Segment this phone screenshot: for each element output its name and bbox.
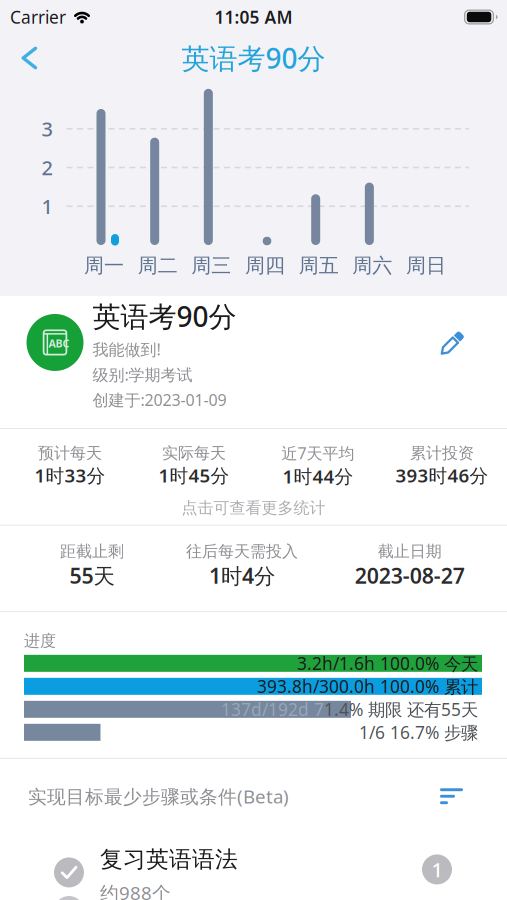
staticText: 1时44分 [282,464,353,488]
staticText: 往后每天需投入 [186,542,298,561]
staticText: 周日 [406,253,446,278]
staticText: 复习英语语法 [100,846,238,873]
staticText: ABC [48,336,69,350]
staticText: 1时45分 [158,463,229,488]
staticText: 周四 [245,253,285,278]
staticText: 1时4分 [209,561,275,590]
staticText: Carrier [10,5,66,28]
button[interactable]: Edit [440,340,507,368]
staticText: 约988个 [100,880,171,900]
staticText: 级别:学期考试 [92,364,192,385]
staticText: 英语考90分 [181,39,325,77]
staticText: 137d/192d 7 [221,698,324,721]
staticText: 1时33分 [34,463,105,488]
button[interactable]: Back [0,46,38,69]
staticText: 点击可查看更多统计 [181,498,325,518]
staticText: 我能做到! [92,339,160,360]
staticText: 进度 [24,631,56,651]
staticText: 393时46分 [395,463,488,488]
staticText: 1 [431,856,442,883]
staticText: 创建于:2023-01-09 [92,389,226,410]
staticText: 预计每天 [38,443,102,463]
staticText: 55天 [69,561,114,590]
staticText: 周六 [352,253,392,278]
staticText: 截止日期 [378,542,442,561]
staticText: 英语考90分 [92,297,236,335]
staticText: 1/6 16.7% 步骤 [359,721,478,744]
staticText: 周二 [138,253,178,278]
staticText: 2 [41,154,52,181]
staticText: 3 [41,115,52,142]
staticText: 393.8h/300.0h 100.0% 累计 [257,675,478,698]
staticText: 实际每天 [162,443,226,463]
staticText: 实现目标最少步骤或条件(Beta) [28,784,289,809]
staticText: 1.4% 期限 还有55天 [324,698,478,721]
staticText: 1 [41,193,52,220]
staticText: 3.2h/1.6h 100.0% 今天 [297,652,478,675]
button[interactable]: Sort steps [440,788,465,804]
staticText: 周一 [84,253,124,278]
button[interactable]: 复习英语语法 [0,809,507,900]
button[interactable]: 预计每天 [0,429,507,525]
staticText: 周五 [299,253,339,278]
staticText: 累计投资 [410,443,474,463]
staticText: 11:05 AM [214,5,292,28]
staticText: 近7天平均 [281,442,354,464]
staticText: 周三 [191,253,231,278]
staticText: 距截止剩 [60,542,124,561]
staticText: 2023-08-27 [355,561,465,590]
